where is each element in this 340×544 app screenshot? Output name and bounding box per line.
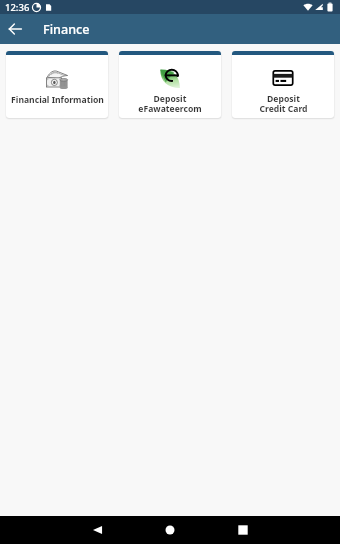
staticText: 12:36: [5, 1, 30, 14]
other: Back: [91, 523, 105, 537]
button[interactable]: Financial Information: [6, 51, 108, 118]
button[interactable]: Back: [0, 14, 30, 44]
staticText: Financial Information: [11, 94, 104, 106]
button[interactable]: Deposit Credit Card: [232, 51, 334, 118]
staticText: Deposit eFawateercom: [138, 93, 202, 114]
button[interactable]: Deposit eFawateercom: [119, 51, 221, 118]
other: Recents: [236, 523, 250, 537]
other: Home: [163, 523, 177, 537]
staticText: Finance: [43, 21, 90, 38]
staticText: Deposit Credit Card: [259, 93, 308, 114]
